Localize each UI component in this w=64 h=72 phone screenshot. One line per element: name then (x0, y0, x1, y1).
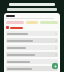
button[interactable]: Search (9, 3, 55, 6)
button[interactable] (6, 45, 58, 50)
other: Alert (6, 26, 9, 29)
button[interactable] (6, 52, 58, 57)
button[interactable]: Add (52, 63, 58, 69)
button[interactable] (6, 66, 58, 71)
button[interactable]: Alert (6, 26, 58, 29)
button[interactable] (6, 31, 58, 36)
button[interactable]: Category (6, 21, 24, 24)
button[interactable] (6, 38, 58, 43)
button[interactable] (6, 59, 58, 64)
button[interactable]: Filter (7, 8, 57, 11)
button[interactable]: Category (40, 21, 58, 24)
button[interactable]: Category (26, 21, 38, 24)
